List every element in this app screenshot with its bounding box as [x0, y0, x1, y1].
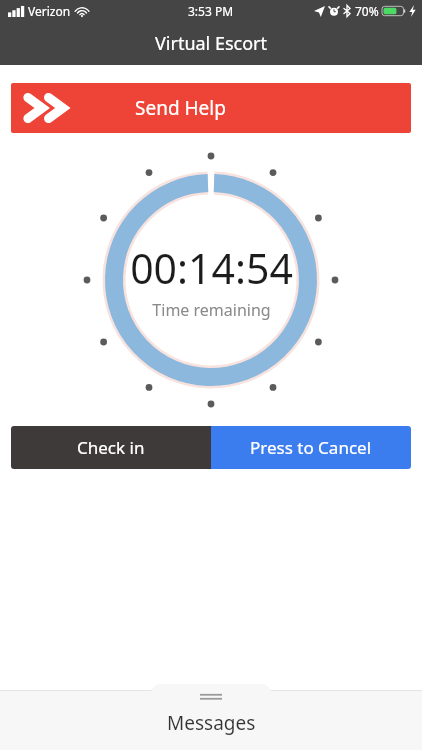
other: Expand messages [200, 693, 222, 701]
button[interactable]: Expand messages [0, 684, 422, 750]
staticText: Check in [77, 436, 145, 459]
staticText: Press to Cancel [250, 436, 372, 459]
staticText: Messages [167, 710, 256, 736]
staticText: Time remaining [152, 299, 271, 321]
staticText: 70% [355, 3, 379, 19]
staticText: 00:14:54 [130, 240, 293, 296]
button[interactable]: Send Help [11, 83, 411, 133]
staticText: 3:53 PM [188, 3, 234, 19]
button[interactable]: Press to Cancel [211, 426, 411, 469]
staticText: Send Help [135, 95, 226, 121]
staticText: Virtual Escort [155, 31, 268, 56]
staticText: Verizon [28, 3, 71, 19]
button[interactable]: Check in [11, 426, 211, 469]
